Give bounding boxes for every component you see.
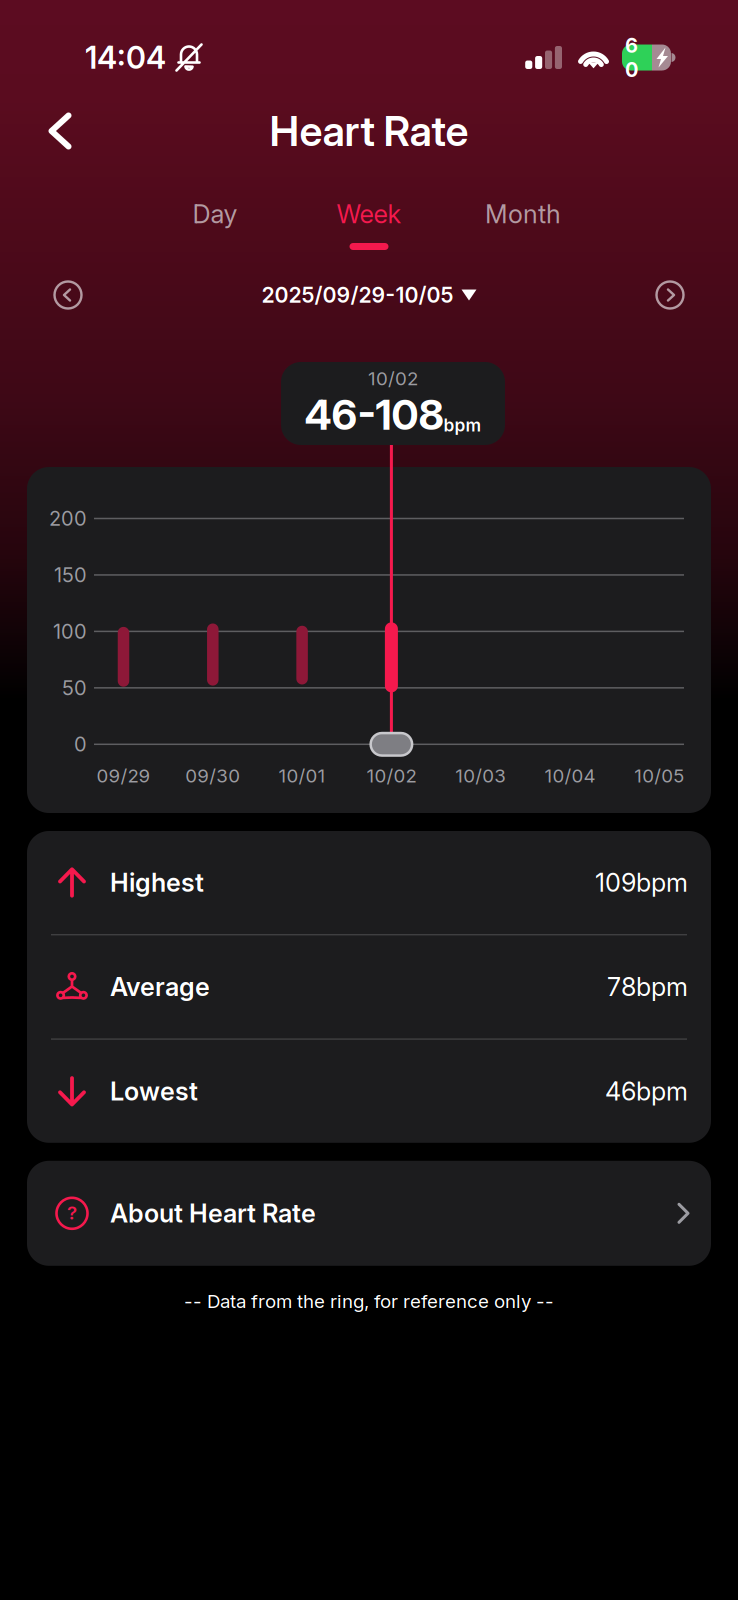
staticText: Highest <box>110 867 204 898</box>
staticText: Day <box>192 199 237 229</box>
staticText: 46-108 <box>304 390 443 440</box>
staticText: 10/03 <box>455 764 506 787</box>
button[interactable]: Lowest <box>27 1040 711 1143</box>
staticText: 0 <box>74 732 87 756</box>
staticText: 60 <box>625 33 638 82</box>
staticText: 14:04 <box>85 39 166 76</box>
staticText: About Heart Rate <box>110 1198 316 1229</box>
button[interactable]: Previous week <box>48 275 88 315</box>
staticText: 10/01 <box>279 764 326 787</box>
staticText: Heart Rate <box>269 106 468 156</box>
staticText: 10/02 <box>366 764 416 787</box>
staticText: 2025/09/29-10/05 <box>261 282 453 308</box>
button[interactable]: Week <box>292 181 446 264</box>
button[interactable]: Highest <box>27 831 711 934</box>
staticText: 46bpm <box>605 1076 688 1107</box>
button[interactable]: Back <box>31 98 89 164</box>
staticText: 10/05 <box>634 764 684 787</box>
button[interactable]: Average <box>27 935 711 1038</box>
staticText: Lowest <box>110 1076 198 1107</box>
staticText: ? <box>67 1201 77 1224</box>
button[interactable]: Month <box>446 181 600 264</box>
staticText: 100 <box>53 619 87 643</box>
button[interactable]: ? <box>27 1161 711 1266</box>
staticText: Average <box>110 972 210 1002</box>
staticText: 150 <box>54 563 87 587</box>
staticText: Month <box>485 199 561 229</box>
staticText: 109bpm <box>595 867 688 898</box>
button[interactable]: Next week <box>650 275 690 315</box>
staticText: -- Data from the ring, for reference onl… <box>184 1290 554 1312</box>
staticText: 78bpm <box>607 972 688 1002</box>
staticText: 09/30 <box>185 764 240 787</box>
staticText: Week <box>336 199 401 229</box>
staticText: 200 <box>49 506 87 531</box>
staticText: bpm <box>443 415 481 436</box>
button[interactable]: 2025/09/29-10/05 <box>261 282 476 308</box>
button[interactable]: Day <box>138 181 292 264</box>
staticText: 10/02 <box>368 367 418 390</box>
staticText: 50 <box>62 676 87 700</box>
staticText: 10/04 <box>544 764 595 787</box>
staticText: 09/29 <box>96 764 150 787</box>
